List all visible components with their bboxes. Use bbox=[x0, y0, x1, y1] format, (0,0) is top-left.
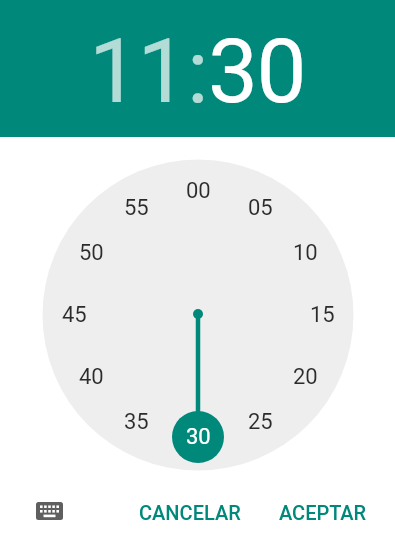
button[interactable]: 10 bbox=[275, 236, 335, 270]
button[interactable]: 45 bbox=[44, 298, 104, 332]
button[interactable]: CANCELAR bbox=[120, 492, 260, 532]
staticText: 30 bbox=[208, 19, 306, 123]
button[interactable]: 20 bbox=[275, 360, 335, 394]
staticText: ACEPTAR bbox=[279, 501, 367, 524]
staticText: : bbox=[187, 19, 208, 123]
button[interactable]: 11 bbox=[89, 19, 187, 123]
staticText: 20 bbox=[293, 364, 318, 390]
button[interactable]: 55 bbox=[106, 191, 166, 225]
staticText: 50 bbox=[79, 240, 104, 266]
staticText: 45 bbox=[62, 302, 87, 328]
staticText: 25 bbox=[248, 409, 273, 435]
button[interactable]: 15 bbox=[292, 298, 352, 332]
button[interactable]: 40 bbox=[61, 360, 121, 394]
button[interactable]: 50 bbox=[61, 236, 121, 270]
button[interactable]: 05 bbox=[230, 191, 290, 225]
button[interactable]: ACEPTAR bbox=[258, 492, 388, 532]
staticText: CANCELAR bbox=[139, 501, 241, 524]
staticText: 30 bbox=[186, 424, 211, 450]
staticText: 55 bbox=[124, 195, 149, 221]
staticText: 15 bbox=[310, 302, 335, 328]
staticText: 40 bbox=[79, 364, 104, 390]
button[interactable]: 30 bbox=[168, 420, 228, 454]
staticText: 35 bbox=[124, 409, 149, 435]
button[interactable]: 25 bbox=[230, 405, 290, 439]
button[interactable]: 35 bbox=[106, 405, 166, 439]
button[interactable] bbox=[33, 495, 67, 527]
button[interactable]: 30 bbox=[208, 19, 306, 123]
staticText: 10 bbox=[293, 240, 318, 266]
button[interactable]: 00 bbox=[168, 174, 228, 208]
staticText: 11 bbox=[89, 19, 187, 123]
staticText: 05 bbox=[248, 195, 273, 221]
staticText: 00 bbox=[186, 178, 211, 204]
